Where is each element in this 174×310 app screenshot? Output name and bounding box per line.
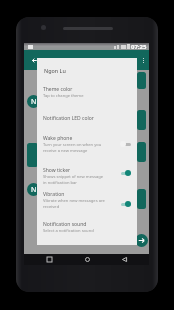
button[interactable] [119,200,132,208]
staticText: Shows snippet of new message [43,174,104,180]
staticText: Notification sound [43,221,87,228]
button[interactable]: Notification LED color [37,110,137,126]
staticText: receive a new message [43,148,88,154]
staticText: Vibration [43,191,65,198]
staticText: Ngon Lu [44,67,66,74]
staticText: Tap to change theme [43,93,84,99]
button[interactable]: Theme color [37,81,137,103]
staticText: Settings [41,56,70,66]
staticText: Turn your screen on when you [43,142,102,148]
button[interactable]: Vibration [37,186,137,214]
staticText: 07:25 [131,43,147,50]
button[interactable]: Notification sound [37,216,137,238]
staticText: Vibrate when new messages are [43,198,105,204]
button[interactable]: More options [137,50,149,70]
button[interactable]: Show ticker [37,162,137,190]
staticText: Wake phone [43,135,73,142]
staticText: N [31,185,37,195]
staticText: Show ticker [43,167,71,174]
button[interactable]: Recents [37,254,61,265]
button[interactable]: Back [112,254,136,265]
button[interactable]: Back [27,50,41,70]
button[interactable]: Send message [135,234,148,247]
staticText: N [31,97,37,107]
button[interactable]: Home [75,254,99,265]
button[interactable] [119,140,132,148]
staticText: Theme color [43,86,73,93]
button[interactable] [119,169,132,177]
staticText: Select a notification sound [43,228,94,234]
staticText: in notification bar [43,180,78,186]
staticText: Notification LED color [43,115,94,122]
button[interactable]: Wake phone [37,130,137,158]
staticText: received [43,204,60,210]
